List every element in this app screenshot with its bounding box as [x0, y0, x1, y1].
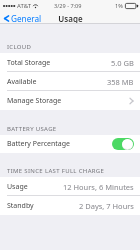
- staticText: Standby: [7, 201, 34, 211]
- staticText: General: [11, 13, 42, 24]
- button[interactable]: Manage Storage: [0, 91, 140, 110]
- button[interactable]: Available: [0, 72, 140, 91]
- staticText: Usage: [7, 182, 28, 192]
- staticText: 3/29 - 7:09: [54, 2, 82, 10]
- button[interactable]: Total Storage: [0, 53, 140, 72]
- staticText: TIME SINCE LAST FULL CHARGE: [7, 167, 105, 175]
- staticText: AT&T: [17, 2, 31, 10]
- staticText: 5.0 GB: [111, 58, 134, 68]
- staticText: Manage Storage: [7, 96, 62, 106]
- staticText: 12 Hours, 6 Minutes: [63, 182, 134, 192]
- staticText: 2 Days, 7 Hours: [79, 201, 134, 211]
- staticText: BATTERY USAGE: [7, 125, 57, 133]
- button[interactable]: Usage: [0, 177, 140, 196]
- button[interactable]: Standby: [0, 196, 140, 215]
- staticText: 1%: [115, 2, 123, 10]
- staticText: Available: [7, 77, 37, 87]
- staticText: Battery Percentage: [7, 139, 71, 149]
- staticText: Total Storage: [7, 58, 51, 68]
- staticText: Usage: [58, 13, 83, 24]
- staticText: ICLOUD: [7, 43, 32, 51]
- button[interactable]: Battery Percentage: [0, 135, 140, 153]
- button[interactable]: Battery Percentage toggle: [112, 138, 134, 150]
- staticText: 358 MB: [107, 77, 134, 87]
- button[interactable]: General: [4, 12, 42, 24]
